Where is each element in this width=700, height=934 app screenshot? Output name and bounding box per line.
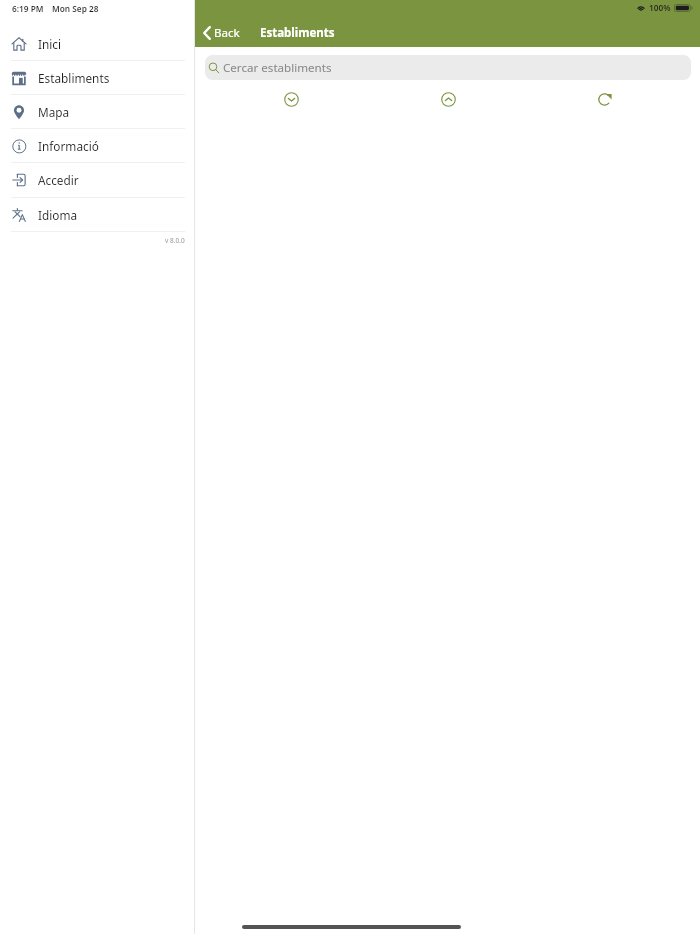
button[interactable]: Cercar establiments bbox=[205, 55, 691, 80]
staticText: Idioma bbox=[38, 207, 78, 223]
button[interactable]: Establiments bbox=[0, 61, 195, 95]
button[interactable]: Informació bbox=[0, 129, 195, 163]
staticText: Inici bbox=[38, 36, 62, 52]
staticText: 100% bbox=[649, 2, 671, 13]
button[interactable]: Expand all bbox=[279, 87, 303, 111]
staticText: Cercar establiments bbox=[223, 60, 332, 76]
button[interactable]: Refresh bbox=[592, 87, 616, 111]
staticText: 6:19 PM bbox=[12, 3, 44, 14]
staticText: Establiments bbox=[260, 25, 335, 41]
button[interactable]: Accedir bbox=[0, 163, 195, 198]
staticText: Back bbox=[214, 25, 240, 41]
button[interactable]: Idioma bbox=[0, 198, 195, 232]
button[interactable]: Collapse all bbox=[436, 87, 460, 111]
button[interactable]: Back bbox=[201, 22, 242, 44]
button[interactable]: Inici bbox=[0, 27, 195, 61]
staticText: v 8.0.0 bbox=[165, 236, 185, 245]
staticText: Mapa bbox=[38, 104, 70, 120]
staticText: Informació bbox=[38, 138, 99, 154]
staticText: Accedir bbox=[38, 172, 79, 188]
button[interactable]: Mapa bbox=[0, 95, 195, 129]
staticText: Mon Sep 28 bbox=[52, 3, 99, 14]
staticText: Establiments bbox=[38, 70, 110, 86]
